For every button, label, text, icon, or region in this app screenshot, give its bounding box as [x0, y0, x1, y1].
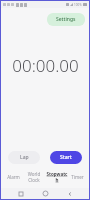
button[interactable]: Start [50, 151, 82, 164]
staticText: World Clock [22, 171, 46, 183]
button[interactable]: Back [64, 188, 75, 199]
button[interactable]: Stopwatch [46, 169, 68, 185]
button[interactable]: Timer [68, 172, 86, 182]
staticText: 100% [74, 3, 82, 7]
staticText: Stopwatch [46, 171, 68, 183]
staticText: Settings [56, 16, 76, 23]
button[interactable]: Recent apps [15, 188, 26, 199]
staticText: Alarm [7, 174, 20, 180]
button[interactable]: Lap [8, 151, 40, 164]
staticText: Start [60, 154, 72, 161]
staticText: 00:00.00 [12, 54, 79, 77]
button[interactable]: Home [40, 188, 51, 199]
button[interactable]: Settings [47, 13, 85, 26]
staticText: Timer [71, 174, 84, 180]
button[interactable]: Alarm [4, 172, 22, 182]
button[interactable]: World Clock [22, 169, 46, 185]
staticText: Lap [20, 154, 29, 161]
